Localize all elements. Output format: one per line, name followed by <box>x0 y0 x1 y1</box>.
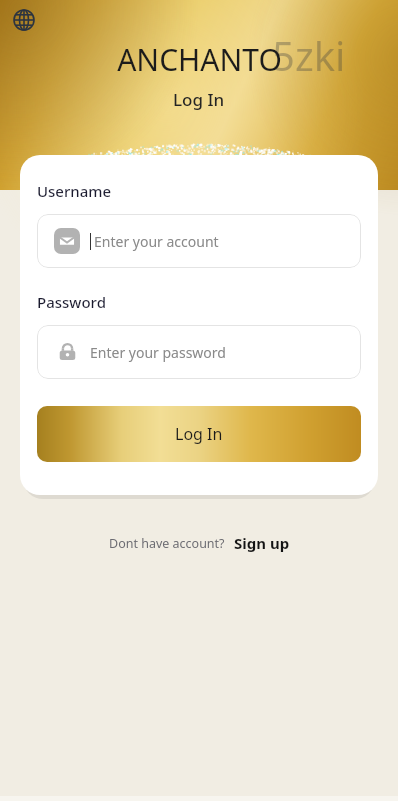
staticText: Log In <box>173 88 225 111</box>
staticText: Password <box>37 292 106 312</box>
staticText: Enter your account <box>94 232 219 251</box>
staticText: Log In <box>175 423 223 445</box>
button[interactable]: Log In <box>37 406 361 462</box>
staticText: Enter your password <box>90 343 226 362</box>
staticText: ANCHANTO <box>117 39 282 80</box>
staticText: Sign up <box>234 533 290 553</box>
button[interactable]: Sign up <box>234 533 290 553</box>
staticText: Username <box>37 181 112 201</box>
staticText: Dont have account? <box>109 535 225 552</box>
button[interactable]: Language <box>10 6 38 34</box>
button[interactable]: Enter your account <box>37 214 361 268</box>
button[interactable]: Enter your password <box>37 325 361 379</box>
staticText: 5zki <box>272 28 346 82</box>
